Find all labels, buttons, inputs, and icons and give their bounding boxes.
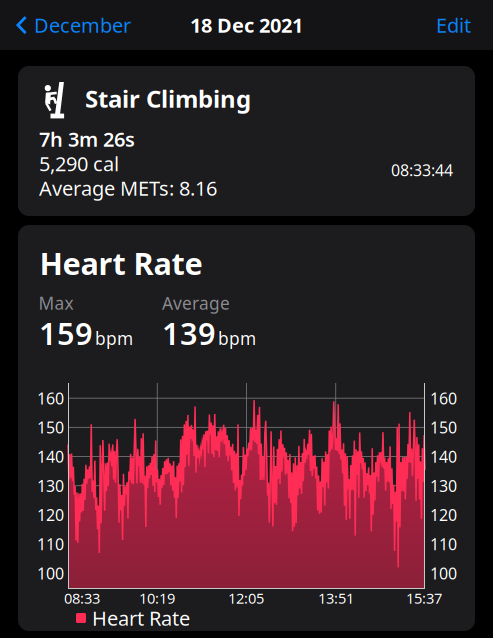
staticText: Average METs: 8.16 [39,175,217,201]
staticText: 100 [37,563,64,584]
staticText: 15:37 [406,588,442,608]
staticText: Heart Rate [39,243,202,283]
staticText: 130 [37,475,64,496]
staticText: 140 [37,446,64,467]
staticText: Average [162,291,230,314]
staticText: 110 [430,533,457,555]
button[interactable]: December [0,0,143,50]
staticText: 08:33 [64,588,100,608]
staticText: 18 Dec 2021 [190,12,303,38]
staticText: bpm [95,327,133,350]
staticText: Heart Rate [92,605,190,631]
staticText: 110 [37,533,64,555]
staticText: 160 [37,387,64,409]
staticText: 130 [430,475,457,496]
staticText: 150 [430,417,457,438]
staticText: 120 [430,504,457,525]
staticText: bpm [218,327,256,350]
staticText: 140 [430,446,457,467]
staticText: 100 [430,563,457,584]
staticText: 159 [39,313,93,353]
staticText: Max [38,291,73,314]
staticText: 08:33:44 [391,159,453,181]
staticText: 5,290 cal [39,150,119,177]
staticText: 12:05 [228,588,264,608]
staticText: 120 [37,504,64,525]
staticText: 160 [430,387,457,409]
staticText: Edit [436,12,471,38]
staticText: Stair Climbing [85,83,251,114]
staticText: 13:51 [318,588,354,608]
staticText: 10:19 [139,588,175,608]
staticText: 150 [37,417,64,438]
staticText: December [34,12,131,38]
button[interactable]: Edit [422,0,493,50]
staticText: 139 [162,313,216,353]
staticText: 7h 3m 26s [39,126,135,152]
